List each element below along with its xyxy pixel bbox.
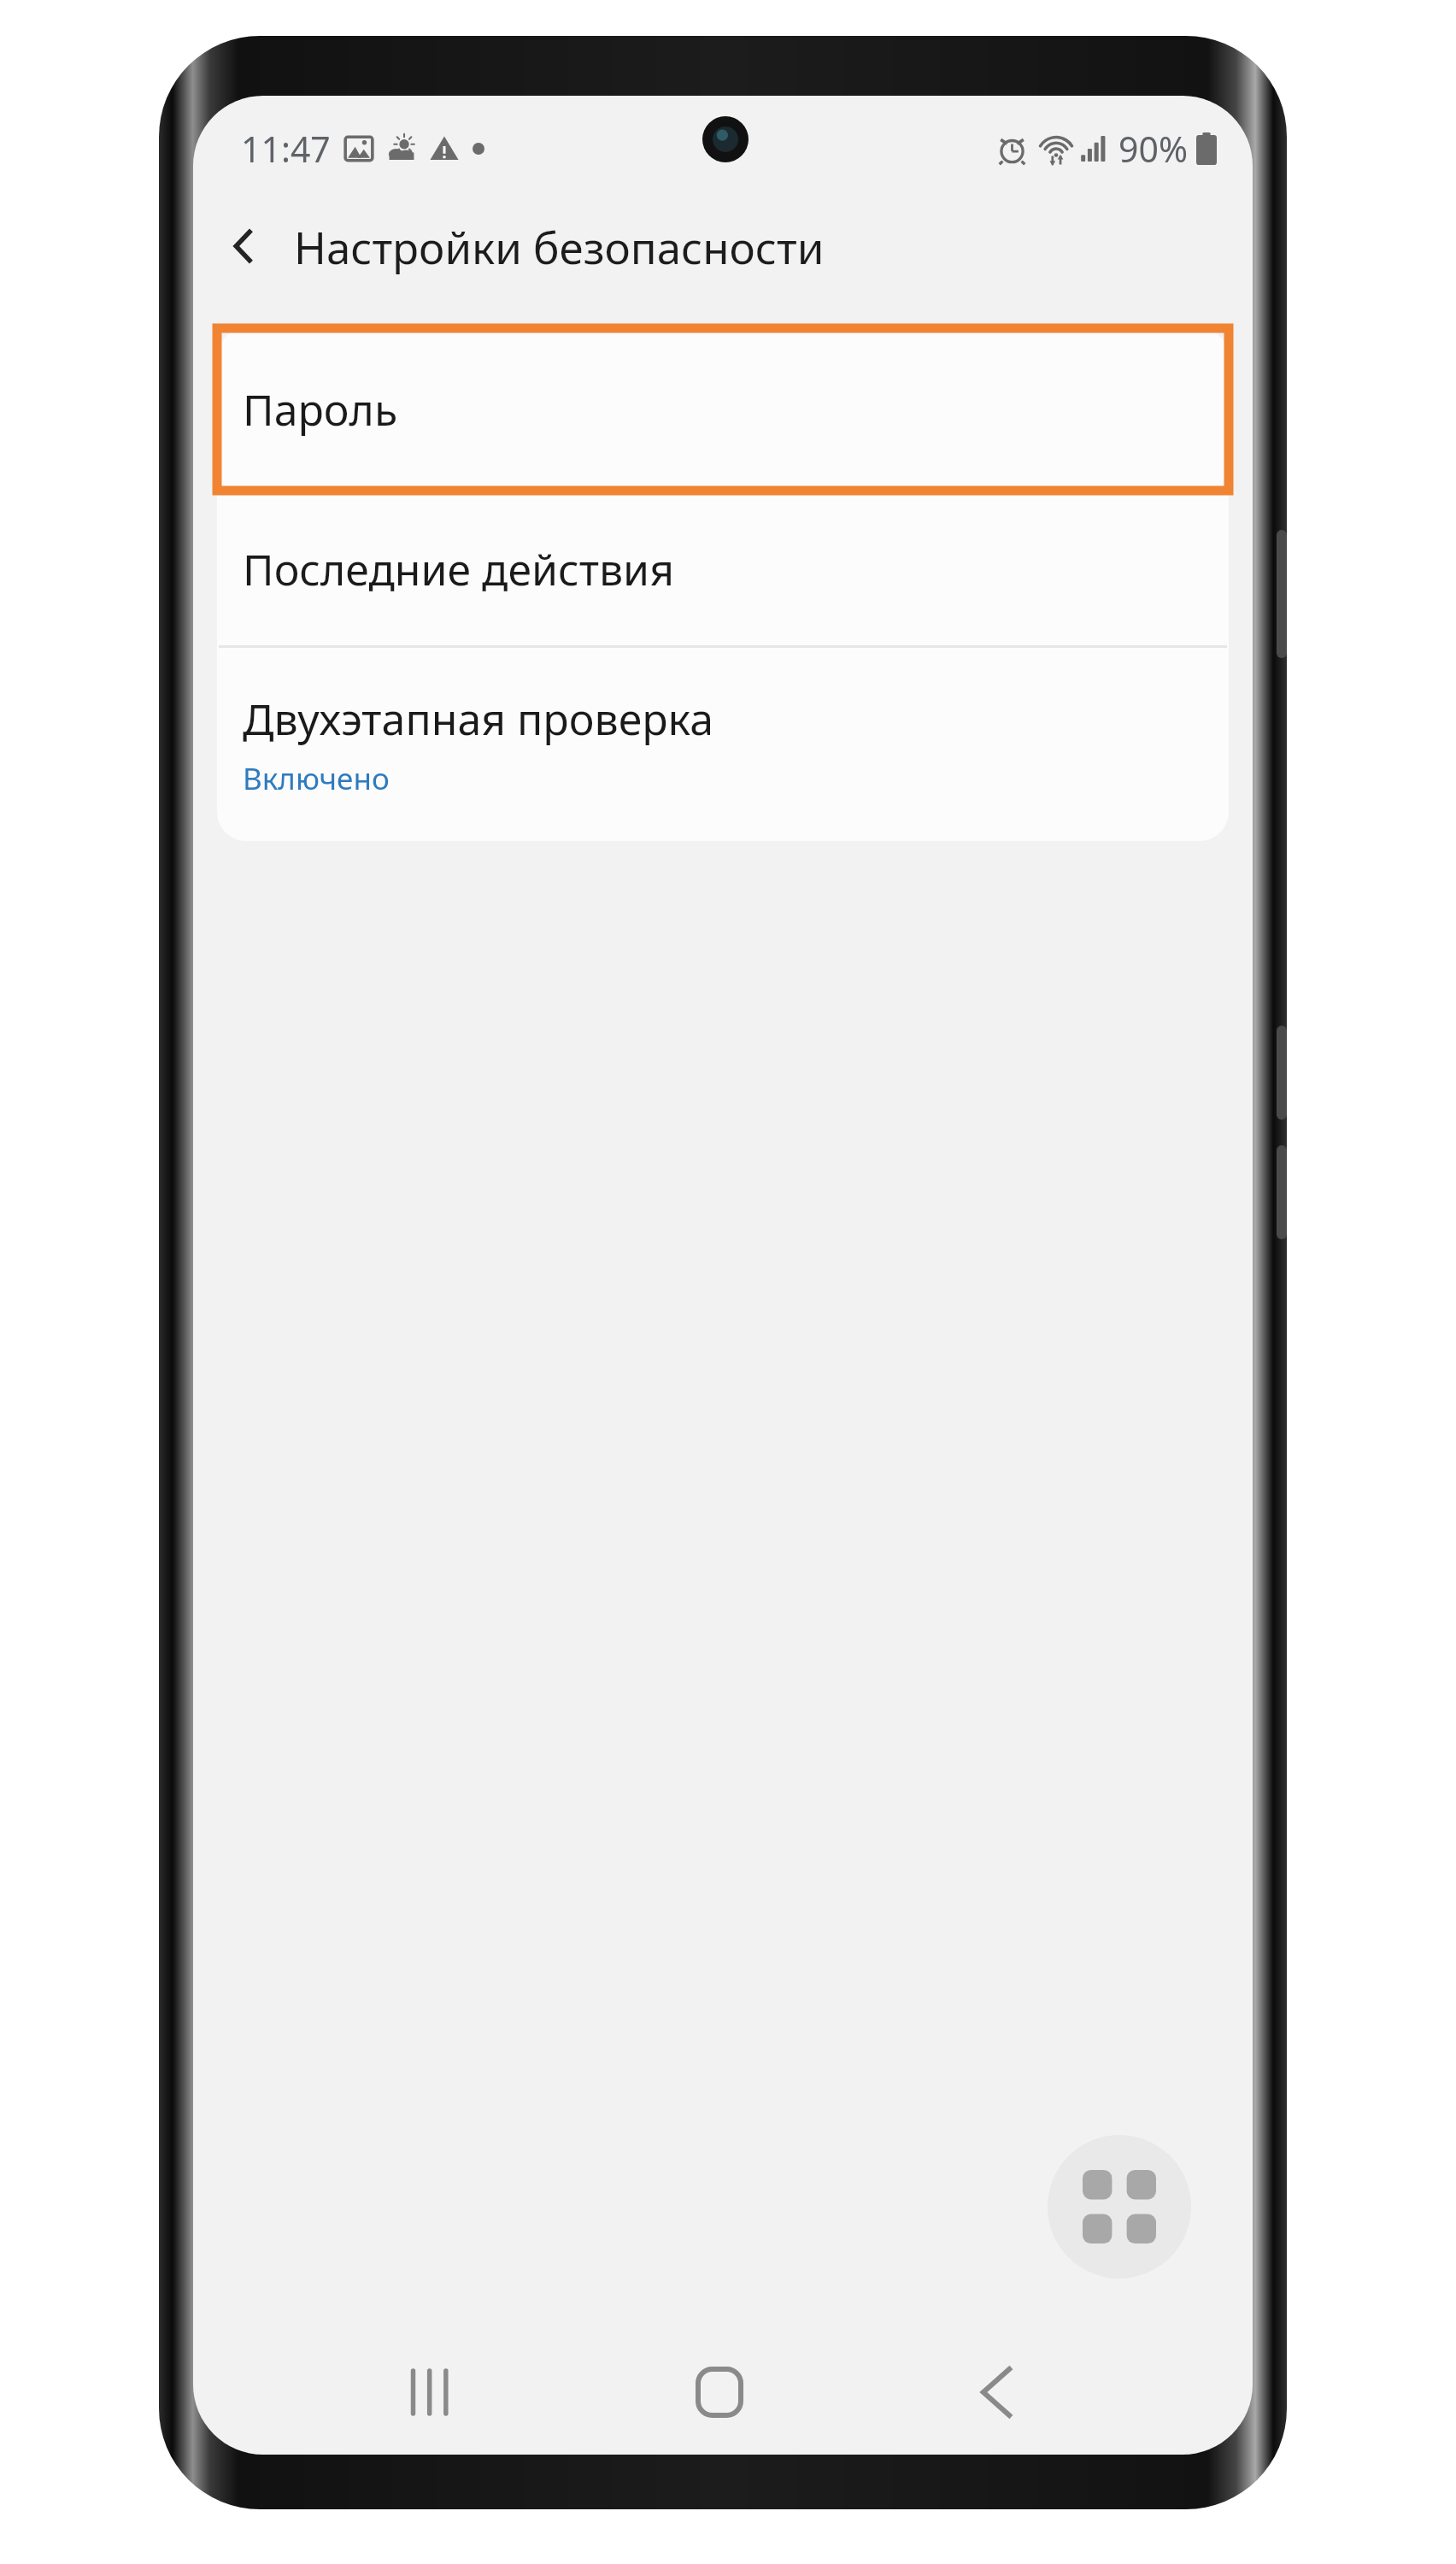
staticText: Двухэтапная проверка (243, 690, 713, 748)
button[interactable]: Пароль (217, 328, 1229, 491)
staticText: Пароль (243, 380, 398, 438)
staticText: Включено (243, 758, 390, 799)
button[interactable]: Back (932, 2330, 1060, 2455)
button[interactable]: Recents (364, 2330, 492, 2455)
staticText: 90% (1118, 125, 1188, 173)
staticText: Настройки безопасности (294, 217, 825, 276)
button[interactable]: Back (193, 195, 294, 297)
staticText: 11:47 (241, 125, 331, 173)
button[interactable]: Apps (1048, 2135, 1191, 2279)
button[interactable]: Двухэтапная проверка (217, 648, 1229, 841)
button[interactable]: Home (655, 2330, 784, 2455)
staticText: Последние действия (243, 540, 674, 598)
button[interactable]: Последние действия (217, 491, 1229, 648)
